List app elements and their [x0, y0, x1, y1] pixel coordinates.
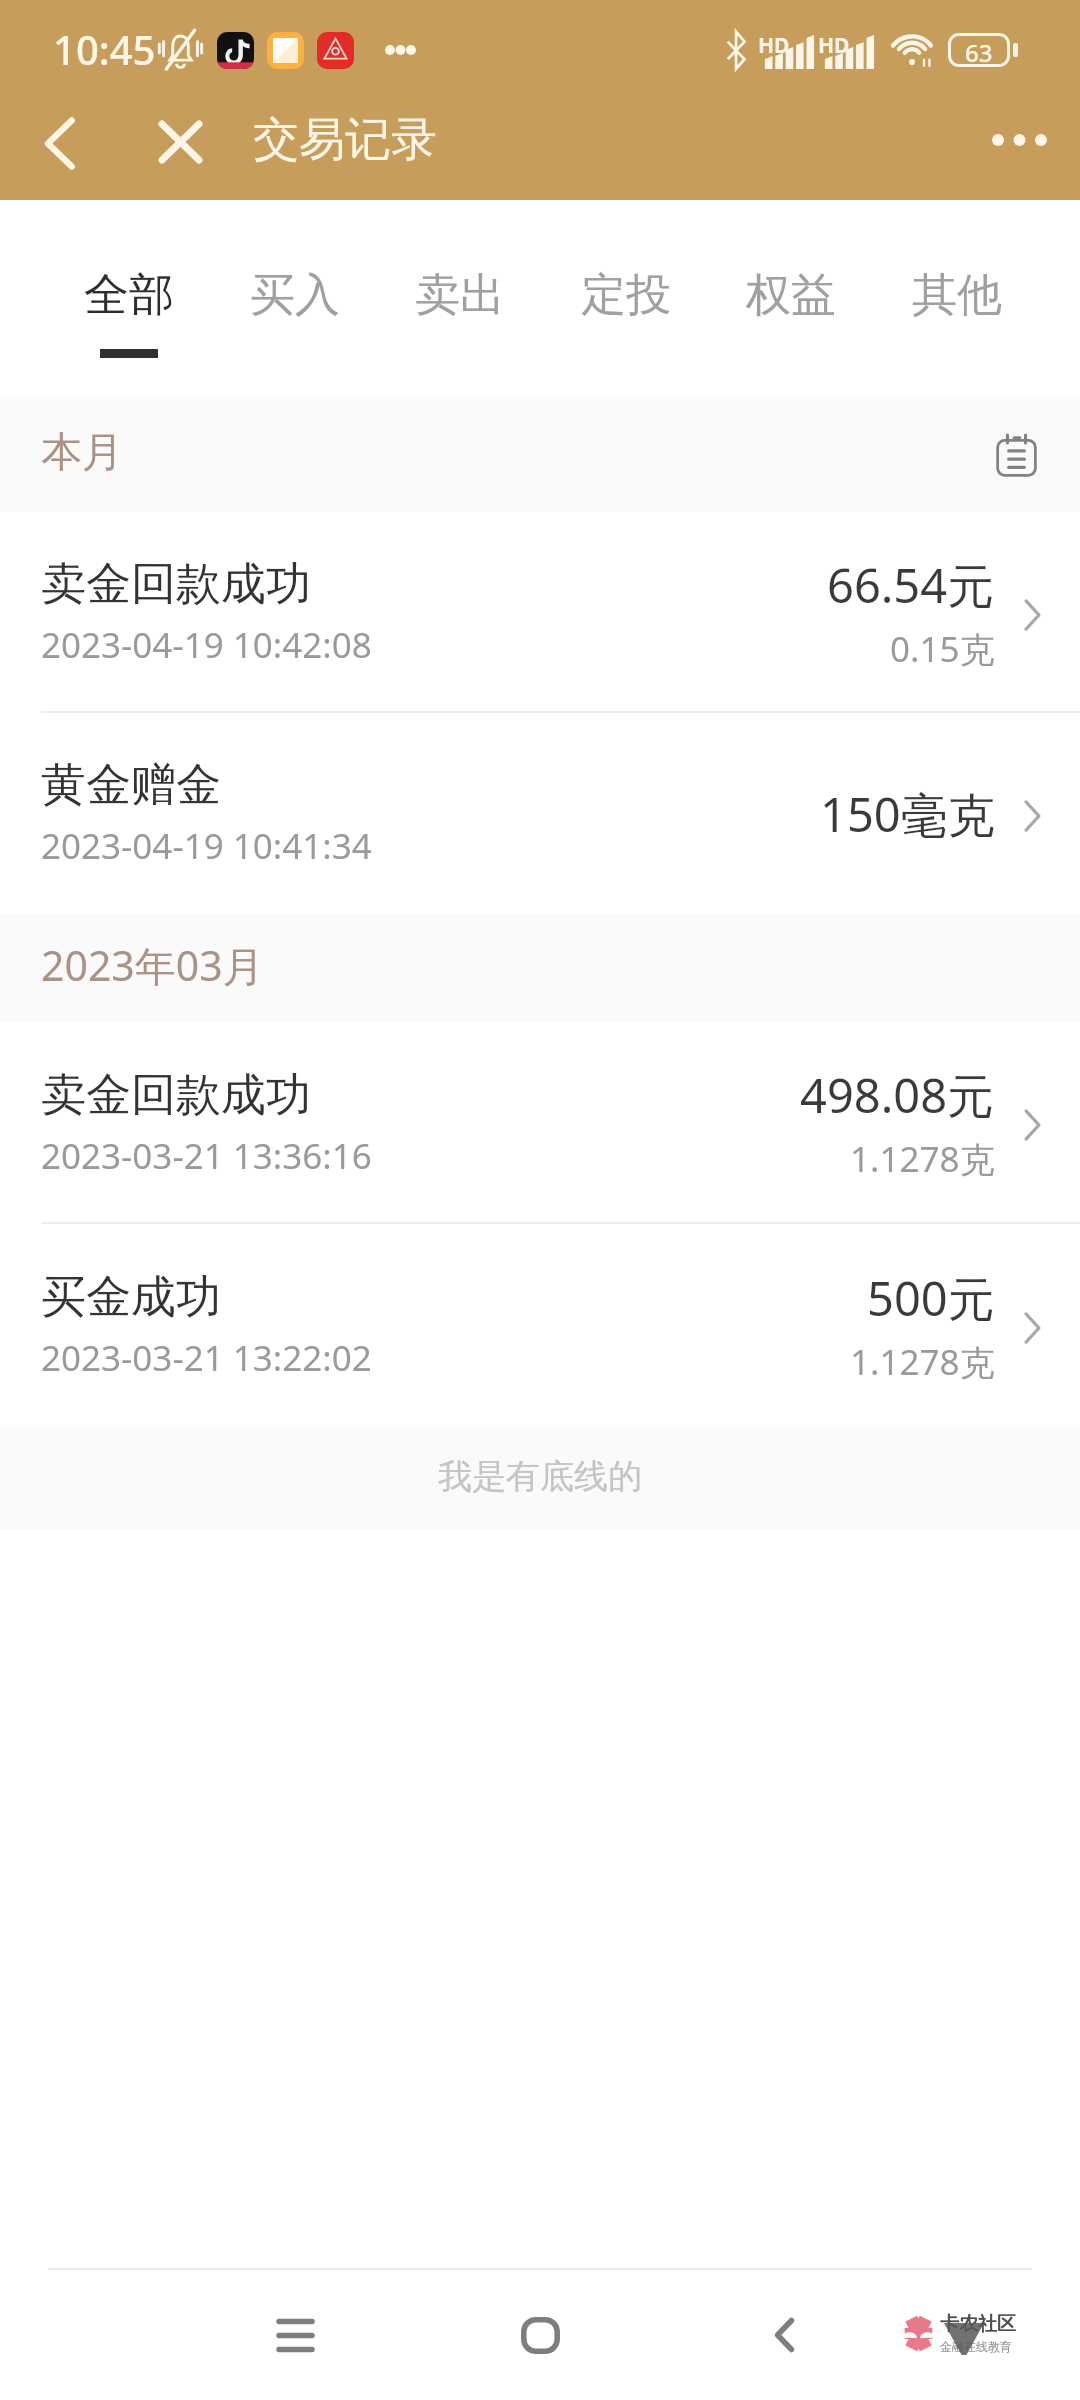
staticText: 2023-03-21 13:22:02	[41, 1334, 372, 1382]
button[interactable]: 买金成功	[0, 1224, 1080, 1427]
button[interactable]: Close	[135, 97, 225, 187]
staticText: 交易记录	[253, 111, 437, 169]
staticText: 买金成功	[41, 1269, 221, 1326]
button[interactable]: 全部	[84, 267, 174, 358]
button[interactable]: 黄金赠金	[0, 713, 1080, 914]
button[interactable]: Back	[739, 2290, 829, 2380]
staticText: 全部	[84, 267, 174, 324]
staticText: HD	[818, 31, 850, 60]
button[interactable]: Home	[495, 2290, 585, 2380]
button[interactable]: Back	[19, 98, 99, 188]
button[interactable]: 定投	[581, 267, 671, 358]
button[interactable]: 权益	[746, 267, 836, 358]
staticText: 2023-03-21 13:36:16	[41, 1132, 372, 1180]
staticText: 150毫克	[820, 782, 995, 846]
staticText: 2023年03月	[41, 937, 264, 993]
staticText: 卖出	[415, 267, 505, 324]
button[interactable]: 买入	[250, 267, 340, 358]
button[interactable]: Statement	[978, 418, 1054, 494]
staticText: 卖金回款成功	[41, 1067, 311, 1124]
button[interactable]: 卖出	[415, 267, 505, 358]
staticText: 10:45	[53, 22, 156, 76]
staticText: 500元	[867, 1266, 995, 1330]
staticText: 1.1278克	[850, 1135, 995, 1183]
staticText: 1.1278克	[850, 1338, 995, 1386]
button[interactable]: 其他	[912, 267, 1002, 358]
staticText: 定投	[581, 267, 671, 324]
staticText: 63	[965, 36, 993, 64]
staticText: 卖金回款成功	[41, 556, 311, 613]
staticText: 498.08元	[800, 1063, 995, 1127]
staticText: 66.54元	[827, 553, 995, 617]
button[interactable]: 卖金回款成功	[0, 1022, 1080, 1224]
staticText: 买入	[250, 267, 340, 324]
staticText: 权益	[746, 267, 836, 324]
staticText: 2023-04-19 10:42:08	[41, 621, 372, 669]
staticText: 其他	[912, 267, 1002, 324]
staticText: 本月	[41, 427, 123, 479]
staticText: HD	[758, 31, 790, 60]
staticText: 卡农社区	[940, 2312, 1016, 2336]
staticText: 金融在线教育	[940, 2339, 1012, 2354]
staticText: 黄金赠金	[41, 757, 221, 814]
button[interactable]: Recents	[250, 2290, 340, 2380]
button[interactable]: 卖金回款成功	[0, 512, 1080, 713]
button[interactable]: More options	[974, 95, 1064, 185]
staticText: 2023-04-19 10:41:34	[41, 822, 372, 870]
staticText: 0.15克	[890, 625, 995, 673]
staticText: 我是有底线的	[438, 1455, 642, 1498]
